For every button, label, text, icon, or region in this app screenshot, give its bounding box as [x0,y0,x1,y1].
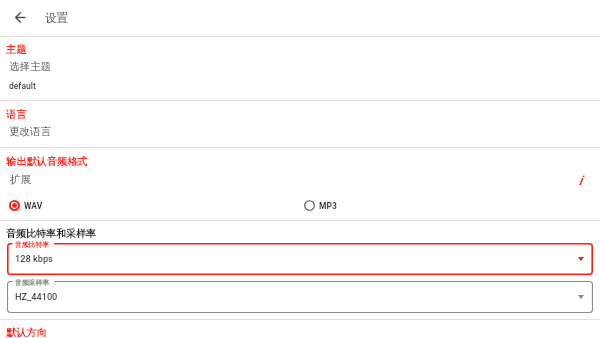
staticText: 语言 [6,108,27,121]
staticText: 设置 [45,11,69,26]
staticText: default [9,81,36,91]
staticText: 输出默认音频格式 [6,155,88,168]
staticText: 选择主题 [9,60,51,73]
staticText: 更改语言 [9,125,51,138]
other: Expand [578,294,584,300]
staticText: 音频比特率 [15,240,49,249]
button[interactable]: Back [12,9,29,26]
staticText: 音频比特率和采样率 [6,227,96,240]
button[interactable]: MP3 [303,197,423,214]
staticText: 主题 [6,43,27,56]
staticText: HZ_44100 [15,291,58,302]
button[interactable]: WAV [8,197,128,214]
staticText: 音频采样率 [15,278,49,287]
staticText: MP3 [319,201,337,211]
button[interactable]: i [579,173,583,188]
staticText: 128 kbps [15,253,53,264]
button[interactable]: HZ_44100 [7,281,593,313]
other: Expand [578,256,584,262]
staticText: 默认方向 [6,326,47,338]
staticText: WAV [24,201,43,211]
staticText: 扩展 [10,173,31,186]
button[interactable]: 128 kbps [7,243,593,275]
